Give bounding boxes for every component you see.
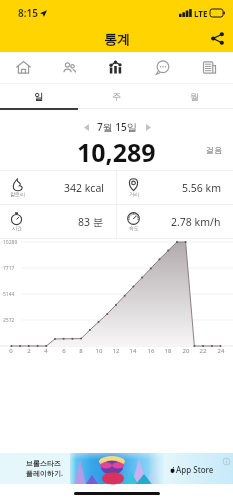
button[interactable]: Ad info: [221, 456, 231, 466]
staticText: 7월 15일: [97, 120, 137, 134]
staticText: 10289: [3, 239, 18, 246]
staticText: 브롤스타즈: [26, 459, 61, 468]
staticText: 10,289: [77, 135, 156, 165]
button[interactable]: Share: [206, 27, 228, 49]
staticText: 걸음: [206, 145, 222, 155]
button[interactable]: 주: [77, 84, 155, 108]
staticText: 통계: [104, 31, 130, 47]
staticText: 18: [162, 347, 174, 355]
button[interactable]: News: [186, 52, 233, 83]
button[interactable]: Friends: [46, 52, 92, 83]
button[interactable]: Next day: [138, 117, 158, 137]
staticText: 칼로리: [10, 191, 25, 197]
staticText: 342 kcal: [64, 181, 104, 195]
staticText: 월: [190, 91, 199, 102]
staticText: 5144: [3, 291, 15, 298]
staticText: LTE: [194, 8, 208, 19]
button[interactable]: Statistics: [92, 52, 139, 83]
staticText: 16: [145, 347, 157, 355]
staticText: 10: [93, 347, 105, 355]
staticText: 플레이하기.: [26, 469, 63, 479]
button[interactable]: 칼로리: [0, 171, 116, 204]
staticText: 2572: [3, 317, 15, 324]
staticText: 2: [23, 347, 35, 355]
staticText: 8:15: [18, 6, 38, 20]
button[interactable]: 월: [155, 84, 233, 108]
staticText: 83 분: [78, 215, 104, 229]
staticText: 7717: [3, 265, 15, 272]
staticText: 24: [215, 347, 227, 355]
staticText: 14: [127, 347, 139, 355]
staticText: 주: [112, 91, 121, 102]
staticText: 8: [75, 347, 87, 355]
staticText: 시간: [12, 225, 22, 231]
staticText: 0: [5, 347, 17, 355]
staticText: App Store: [176, 464, 214, 475]
staticText: 2.78 km/h: [171, 215, 221, 229]
staticText: 12: [110, 347, 122, 355]
button[interactable]: 거리: [117, 171, 233, 204]
button[interactable]: Home: [0, 52, 46, 83]
staticText: 4: [40, 347, 52, 355]
button[interactable]: 브롤스타즈: [0, 453, 233, 484]
button[interactable]: Previous day: [76, 117, 96, 137]
staticText: 22: [197, 347, 209, 355]
staticText: 속도: [129, 225, 139, 231]
staticText: 일: [34, 91, 43, 102]
button[interactable]: Chat: [139, 52, 186, 83]
staticText: 5.56 km: [182, 181, 221, 195]
button[interactable]: 속도: [117, 205, 233, 238]
staticText: 거리: [129, 191, 139, 197]
button[interactable]: 일: [0, 84, 77, 108]
staticText: 6: [58, 347, 70, 355]
button[interactable]: 시간: [0, 205, 116, 238]
staticText: 20: [180, 347, 192, 355]
